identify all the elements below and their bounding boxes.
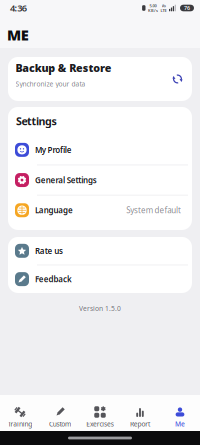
staticText: Feedback xyxy=(35,274,72,284)
button[interactable]: Training xyxy=(0,395,40,431)
button[interactable]: Backup & Restore xyxy=(8,57,192,101)
staticText: 5.00 xyxy=(149,3,156,8)
staticText: Report xyxy=(130,419,150,428)
staticText: 76 xyxy=(184,4,190,12)
button[interactable]: Custom xyxy=(40,395,80,431)
staticText: Rate us xyxy=(35,245,63,256)
staticText: LTE xyxy=(160,8,166,13)
staticText: Settings xyxy=(16,114,56,128)
staticText: Language xyxy=(35,205,73,215)
button[interactable]: Report xyxy=(120,395,160,431)
staticText: System default xyxy=(126,205,181,215)
button[interactable]: Rate us xyxy=(8,237,192,265)
staticText: KB/s xyxy=(148,8,158,13)
staticText: General Settings xyxy=(35,175,97,185)
staticText: 4:36 xyxy=(10,2,27,14)
staticText: Version 1.5.0 xyxy=(79,304,121,313)
button[interactable]: Me xyxy=(160,395,200,431)
staticText: Exercises xyxy=(86,419,114,428)
staticText: Vo xyxy=(161,3,165,8)
button[interactable]: My Profile xyxy=(8,135,192,164)
button[interactable]: Exercises xyxy=(80,395,120,431)
staticText: Synchronize your data xyxy=(15,79,85,88)
staticText: Me xyxy=(175,419,185,428)
button[interactable]: Feedback xyxy=(8,265,192,293)
staticText: My Profile xyxy=(35,144,72,155)
button[interactable]: General Settings xyxy=(8,165,192,195)
staticText: Custom xyxy=(49,419,71,428)
staticText: Training xyxy=(8,419,32,428)
staticText: Backup & Restore xyxy=(15,61,112,75)
staticText: ME xyxy=(7,25,29,44)
button[interactable]: Language xyxy=(8,195,192,225)
